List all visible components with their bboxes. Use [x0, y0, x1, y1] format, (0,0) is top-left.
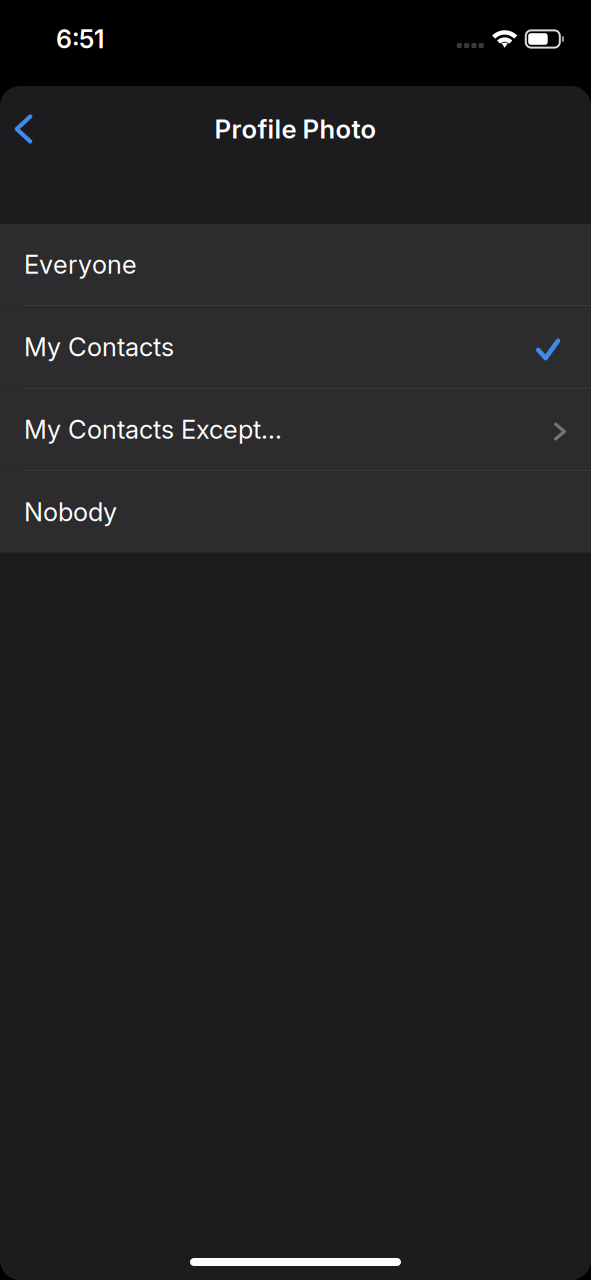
staticText: Everyone [24, 249, 137, 280]
button[interactable]: Everyone [0, 224, 591, 305]
staticText: My Contacts [24, 331, 174, 362]
staticText: 6:51 [56, 24, 104, 54]
staticText: My Contacts Except... [24, 414, 282, 445]
button[interactable]: My Contacts [0, 306, 591, 387]
button[interactable]: Nobody [0, 471, 591, 552]
staticText: Nobody [24, 496, 117, 527]
staticText: Profile Photo [214, 113, 376, 145]
button[interactable]: My Contacts Except... [0, 389, 591, 470]
button[interactable]: Back [0, 101, 47, 157]
